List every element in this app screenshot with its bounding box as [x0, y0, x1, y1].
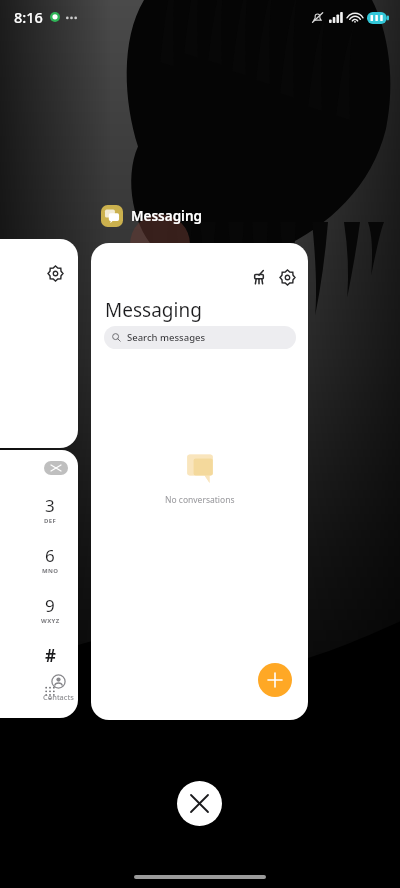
button[interactable]: Messaging [101, 205, 202, 227]
button[interactable]: New conversation [258, 663, 292, 697]
button[interactable]: 6 [28, 542, 72, 576]
staticText: DEF [44, 517, 57, 525]
staticText: 3 [45, 494, 55, 517]
staticText: MNO [42, 567, 59, 575]
button[interactable]: Close all [177, 781, 222, 826]
button[interactable]: 3 [28, 492, 72, 526]
staticText: # [45, 644, 56, 667]
staticText: 9 [45, 594, 55, 617]
button[interactable]: Settings [47, 265, 64, 282]
button[interactable]: # [28, 642, 72, 668]
staticText: Messaging [105, 297, 202, 323]
button[interactable]: Hide keypad [33, 682, 67, 704]
button[interactable]: Clean up [250, 268, 268, 286]
staticText: Search messages [127, 331, 206, 344]
button[interactable]: 9 [28, 592, 72, 626]
button[interactable]: Backspace [44, 461, 68, 475]
staticText: 6 [45, 544, 55, 567]
staticText: No conversations [165, 494, 235, 506]
button[interactable]: Clean up [91, 243, 308, 720]
staticText: 8:16 [14, 7, 43, 27]
staticText: Messaging [131, 207, 202, 225]
staticText: Contacts [43, 692, 74, 702]
staticText: WXYZ [41, 617, 60, 625]
button[interactable]: Search messages [104, 326, 296, 349]
button[interactable]: Contacts [43, 674, 74, 702]
button[interactable]: Settings [279, 269, 296, 286]
button[interactable]: Backspace [0, 450, 78, 718]
button[interactable]: Settings [0, 239, 78, 448]
